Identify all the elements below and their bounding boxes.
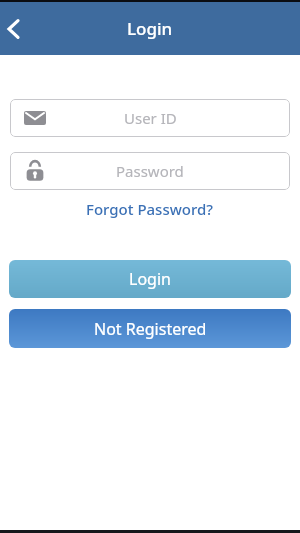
staticText: Forgot Password? [86,199,214,219]
staticText: Password [116,161,184,181]
button[interactable] [0,14,30,44]
button[interactable]: User ID [10,99,290,137]
button[interactable]: Forgot Password? [86,199,214,219]
button[interactable]: Password [10,152,290,190]
staticText: User ID [124,108,177,128]
staticText: Login [127,17,173,40]
button[interactable]: Login [9,260,291,298]
staticText: Login [129,268,171,290]
staticText: Not Registered [94,318,207,340]
button[interactable]: Not Registered [9,309,291,348]
